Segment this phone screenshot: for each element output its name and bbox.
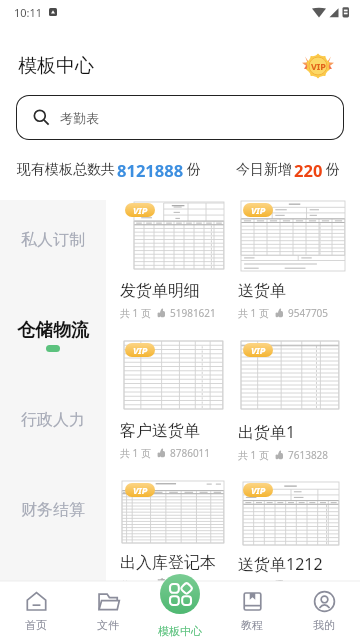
button[interactable]: 仓储物流 <box>0 290 106 380</box>
staticText: 教程 <box>241 618 263 632</box>
staticText: VIP <box>251 344 266 356</box>
staticText: 份 <box>326 161 340 179</box>
button[interactable]: VIP <box>238 480 356 581</box>
button[interactable]: 文件 <box>72 581 144 640</box>
staticText: 财务结算 <box>21 500 85 520</box>
staticText: 220 <box>294 159 323 181</box>
staticText: 7613828 <box>288 448 329 462</box>
staticText: 行政人力 <box>21 410 85 430</box>
staticText: 份 <box>187 161 201 179</box>
staticText: 考勤表 <box>60 110 99 126</box>
staticText: 6612345 <box>170 578 211 581</box>
staticText: 送货单1212 <box>238 553 323 575</box>
button[interactable]: 模板中心 <box>144 581 216 640</box>
staticText: 文件 <box>97 618 119 632</box>
staticText: 出入库登记本 <box>120 553 216 573</box>
staticText: 客户送货单 <box>120 421 200 441</box>
staticText: 首页 <box>25 618 47 632</box>
staticText: 共 1 页 <box>120 446 151 460</box>
staticText: 51981621 <box>170 306 216 320</box>
button[interactable]: 教程 <box>216 581 288 640</box>
button[interactable]: VIP <box>238 200 356 340</box>
button[interactable]: VIP <box>120 200 238 340</box>
staticText: VIP <box>251 484 266 496</box>
staticText: 模板中心 <box>18 54 94 78</box>
staticText: 送货单 <box>238 281 286 301</box>
staticText: 9547705 <box>288 306 329 320</box>
staticText: VIP <box>133 344 148 356</box>
staticText: 共 1 页 <box>120 306 151 320</box>
button[interactable]: VIP <box>120 340 238 480</box>
staticText: VIP <box>311 60 326 72</box>
staticText: VIP <box>251 204 266 216</box>
button[interactable]: 私人订制 <box>0 200 106 290</box>
staticText: 现有模板总数共 <box>17 161 115 179</box>
staticText: 8786011 <box>170 446 211 460</box>
button[interactable]: VIP <box>238 340 356 480</box>
staticText: 模板中心 <box>158 624 202 638</box>
staticText: 出货单1 <box>238 421 296 443</box>
staticText: 共 1 页 <box>238 306 269 320</box>
staticText: 私人订制 <box>21 230 85 250</box>
staticText: 发货单明细 <box>120 281 200 301</box>
staticText: 8121888 <box>117 159 184 181</box>
staticText: VIP <box>133 204 148 216</box>
button[interactable]: 行政人力 <box>0 380 106 470</box>
button[interactable]: 财务结算 <box>0 470 106 560</box>
staticText: 我的 <box>313 618 335 632</box>
staticText: 共 1 页 <box>120 578 151 581</box>
button[interactable]: VIP <box>120 480 238 581</box>
button[interactable]: 我的 <box>288 581 360 640</box>
staticText: 今日新增 <box>236 161 292 179</box>
button[interactable]: 首页 <box>0 581 72 640</box>
button[interactable]: 考勤表 <box>16 95 344 140</box>
staticText: 仓储物流 <box>17 319 89 342</box>
staticText: 共 1 页 <box>238 448 269 462</box>
button[interactable]: VIP <box>299 51 337 81</box>
staticText: VIP <box>133 484 148 496</box>
staticText: 10:11 <box>14 5 43 20</box>
